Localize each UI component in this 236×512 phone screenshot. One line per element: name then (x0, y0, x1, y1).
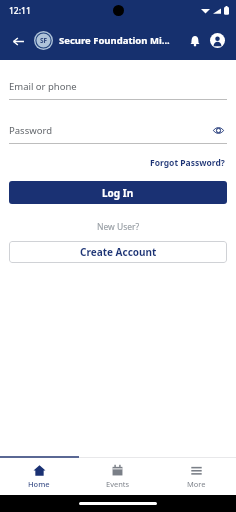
staticText: Events (106, 479, 130, 489)
button[interactable]: Notifications (183, 29, 206, 52)
staticText: More (187, 479, 206, 489)
button[interactable]: Events (78, 458, 157, 495)
staticText: Forgot Password? (150, 157, 225, 169)
staticText: Secure Foundation Mi... (59, 34, 183, 47)
staticText: Password (9, 124, 209, 137)
staticText: Log In (102, 186, 134, 200)
button[interactable]: Forgot Password? (148, 155, 227, 171)
staticText: Home (28, 479, 50, 489)
button[interactable]: Account (206, 29, 229, 52)
staticText: 12:11 (9, 5, 31, 17)
button[interactable]: Home (0, 458, 78, 495)
staticText: New User? (97, 221, 140, 233)
button[interactable]: Create Account (9, 241, 227, 263)
staticText: Email or phone (9, 80, 227, 93)
staticText: Create Account (80, 245, 157, 259)
button[interactable]: Show password (209, 121, 227, 139)
button[interactable]: Back (7, 30, 29, 52)
staticText: SF (40, 36, 48, 45)
button[interactable]: More (157, 458, 236, 495)
button[interactable]: Log In (9, 181, 227, 204)
